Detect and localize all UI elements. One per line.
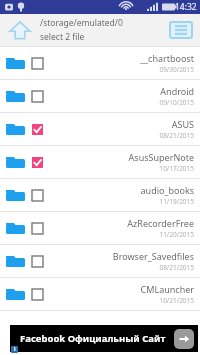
staticText: Browser_Savedfiles xyxy=(112,250,194,262)
staticText: AsusSuperNote xyxy=(128,151,194,163)
staticText: audio_books xyxy=(140,184,194,196)
staticText: ASUS xyxy=(171,118,194,130)
staticText: 11/19/2015 xyxy=(159,197,194,206)
button[interactable]: Selected xyxy=(32,157,43,168)
staticText: 08/21/2015 xyxy=(159,263,194,272)
button[interactable]: Not selected xyxy=(32,91,43,102)
button[interactable]: Not selected xyxy=(32,223,43,234)
button[interactable]: Not selected xyxy=(32,190,43,201)
button[interactable]: Not selected xyxy=(0,212,200,245)
staticText: 09/10/2015 xyxy=(159,98,194,107)
button[interactable]: Facebook Официальный Сайт xyxy=(10,325,198,352)
button[interactable]: Not selected xyxy=(0,179,200,212)
staticText: Facebook Официальный Сайт xyxy=(20,332,166,345)
staticText: 14:32 xyxy=(175,1,197,13)
staticText: 11/20/2015 xyxy=(159,230,194,239)
button[interactable]: Up one level xyxy=(0,14,40,46)
staticText: 08/21/2015 xyxy=(159,131,194,140)
button[interactable]: Selected xyxy=(32,124,43,135)
staticText: CMLauncher xyxy=(140,283,194,295)
button[interactable]: Not selected xyxy=(32,256,43,267)
staticText: 10/21/2015 xyxy=(159,296,194,305)
staticText: __chartboost xyxy=(140,52,194,64)
button[interactable]: Not selected xyxy=(0,245,200,278)
staticText: select 2 file xyxy=(40,31,85,43)
button[interactable]: Not selected xyxy=(0,278,200,311)
button[interactable]: View options xyxy=(162,14,200,46)
staticText: AzRecorderFree xyxy=(127,217,194,229)
button[interactable]: Not selected xyxy=(32,58,43,69)
staticText: /storage/emulated/0 xyxy=(40,17,123,29)
staticText: i xyxy=(14,346,16,353)
staticText: Android xyxy=(160,85,194,97)
button[interactable]: Not selected xyxy=(0,80,200,113)
button[interactable]: Selected xyxy=(0,146,200,179)
button[interactable]: Selected xyxy=(0,113,200,146)
staticText: 09/30/2015 xyxy=(159,65,194,74)
button[interactable]: Not selected xyxy=(32,289,43,300)
staticText: 10/17/2015 xyxy=(159,164,194,173)
button[interactable]: Not selected xyxy=(0,47,200,80)
